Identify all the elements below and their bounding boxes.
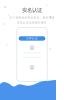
staticText: 为了保障您的资金安全，请先完成	[9, 16, 54, 19]
staticText: 立即认证	[26, 37, 38, 40]
staticText: 实名认证	[22, 7, 42, 14]
staticText: 实名认证后再进行操作	[17, 21, 47, 24]
button[interactable]: 立即认证	[19, 36, 45, 41]
